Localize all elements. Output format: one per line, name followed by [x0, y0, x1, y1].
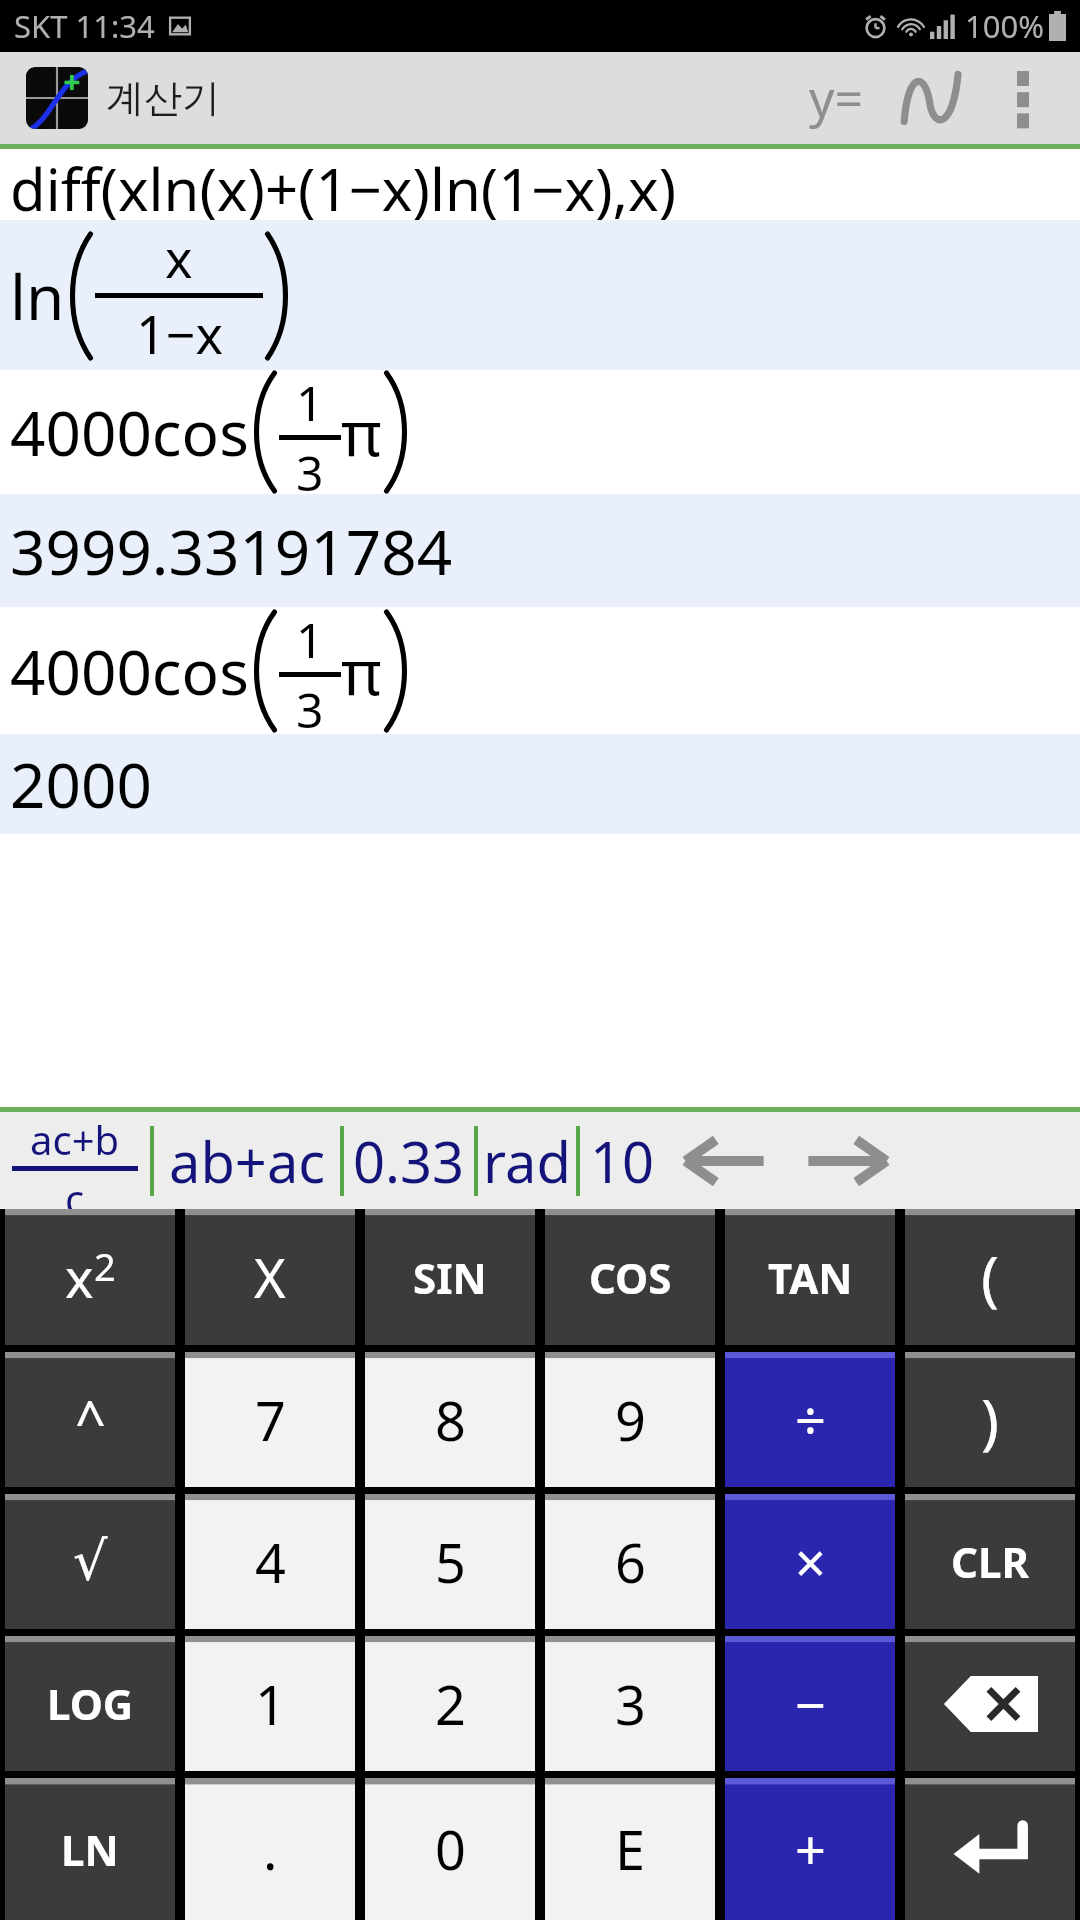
staticText: ac+b: [30, 1112, 120, 1166]
staticText: √: [73, 1530, 108, 1593]
button[interactable]: CLR: [905, 1494, 1075, 1629]
staticText: 1: [296, 370, 324, 435]
staticText: 2000: [10, 742, 152, 826]
button[interactable]: 10: [580, 1112, 664, 1209]
button[interactable]: 6: [545, 1494, 715, 1629]
button[interactable]: Move cursor right: [786, 1112, 908, 1209]
button[interactable]: COS: [545, 1209, 715, 1345]
button[interactable]: Mixed fraction mode: [0, 1112, 150, 1209]
staticText: 7: [255, 1383, 286, 1457]
button[interactable]: Graph: [884, 52, 980, 144]
staticText: 8: [435, 1383, 466, 1457]
button[interactable]: 9: [545, 1352, 715, 1487]
button[interactable]: 4: [185, 1494, 355, 1629]
staticText: ^: [75, 1383, 106, 1457]
staticText: 9: [615, 1383, 646, 1457]
button[interactable]: 8: [365, 1352, 535, 1487]
staticText: 3: [615, 1667, 646, 1741]
staticText: ÷: [795, 1383, 826, 1457]
staticText: 4000cos: [10, 390, 249, 474]
staticText: 0: [435, 1812, 466, 1886]
button[interactable]: 5: [365, 1494, 535, 1629]
staticText: SIN: [413, 1249, 487, 1306]
button[interactable]: .: [185, 1778, 355, 1920]
staticText: x: [165, 222, 193, 293]
staticText: x: [65, 1240, 94, 1314]
button[interactable]: diff(xln(x)+(1−x)ln(1−x),x): [0, 149, 1080, 220]
button[interactable]: 2: [365, 1636, 535, 1771]
staticText: c: [65, 1171, 85, 1209]
staticText: −: [795, 1667, 826, 1741]
button[interactable]: 1: [185, 1636, 355, 1771]
button[interactable]: Enter: [905, 1778, 1075, 1920]
staticText: 4: [255, 1525, 286, 1599]
staticText: LOG: [47, 1675, 134, 1732]
button[interactable]: Function y equals: [788, 52, 884, 144]
button[interactable]: +: [725, 1778, 895, 1920]
staticText: diff(xln(x)+(1−x)ln(1−x),x): [10, 149, 677, 220]
staticText: 1−x: [136, 298, 223, 369]
button[interactable]: ÷: [725, 1352, 895, 1487]
button[interactable]: X: [185, 1209, 355, 1345]
staticText: ab+ac: [169, 1123, 326, 1199]
button[interactable]: x²: [5, 1209, 175, 1345]
button[interactable]: SIN: [365, 1209, 535, 1345]
staticText: 3: [296, 440, 324, 494]
staticText: COS: [589, 1249, 672, 1306]
staticText: 1: [296, 607, 324, 672]
button[interactable]: 2000: [0, 734, 1080, 834]
staticText: LN: [61, 1821, 119, 1878]
button[interactable]: ln: [0, 220, 1080, 370]
staticText: 1: [255, 1667, 286, 1741]
button[interactable]: ab+ac: [154, 1112, 340, 1209]
staticText: 2: [94, 1240, 116, 1292]
button[interactable]: ×: [725, 1494, 895, 1629]
button[interactable]: More options: [980, 55, 1066, 141]
staticText: (: [981, 1236, 999, 1318]
button[interactable]: −: [725, 1636, 895, 1771]
staticText: TAN: [768, 1249, 853, 1306]
staticText: 10: [590, 1123, 655, 1199]
staticText: E: [615, 1812, 646, 1886]
staticText: 3: [296, 677, 324, 734]
staticText: ): [981, 1379, 999, 1461]
button[interactable]: E: [545, 1778, 715, 1920]
button[interactable]: 3: [545, 1636, 715, 1771]
staticText: 5: [435, 1525, 466, 1599]
staticText: SKT 11:34: [14, 5, 155, 47]
button[interactable]: Move cursor left: [664, 1112, 786, 1209]
button[interactable]: ): [905, 1352, 1075, 1487]
staticText: π: [341, 629, 382, 713]
staticText: X: [254, 1240, 286, 1314]
button[interactable]: 4000cos: [0, 370, 1080, 494]
staticText: 6: [615, 1525, 646, 1599]
button[interactable]: 3999.33191784: [0, 494, 1080, 607]
staticText: rad: [483, 1123, 571, 1199]
staticText: 4000cos: [10, 629, 249, 713]
staticText: ln: [10, 254, 65, 338]
staticText: 0.33: [353, 1123, 465, 1199]
button[interactable]: ^: [5, 1352, 175, 1487]
button[interactable]: 0: [365, 1778, 535, 1920]
button[interactable]: TAN: [725, 1209, 895, 1345]
button[interactable]: LOG: [5, 1636, 175, 1771]
staticText: 100%: [965, 5, 1044, 47]
button[interactable]: LN: [5, 1778, 175, 1920]
staticText: .: [263, 1812, 278, 1886]
staticText: 2: [435, 1667, 466, 1741]
staticText: 계산기: [106, 74, 220, 122]
staticText: CLR: [951, 1533, 1029, 1590]
button[interactable]: √: [5, 1494, 175, 1629]
button[interactable]: 4000cos: [0, 607, 1080, 734]
button[interactable]: 7: [185, 1352, 355, 1487]
button[interactable]: 0.33: [344, 1112, 474, 1209]
staticText: +: [795, 1812, 826, 1886]
button[interactable]: rad: [478, 1112, 576, 1209]
staticText: y=: [809, 64, 864, 132]
button[interactable]: Backspace: [905, 1636, 1075, 1771]
staticText: ×: [795, 1525, 826, 1599]
button[interactable]: (: [905, 1209, 1075, 1345]
staticText: π: [341, 390, 382, 474]
staticText: 3999.33191784: [10, 509, 453, 593]
